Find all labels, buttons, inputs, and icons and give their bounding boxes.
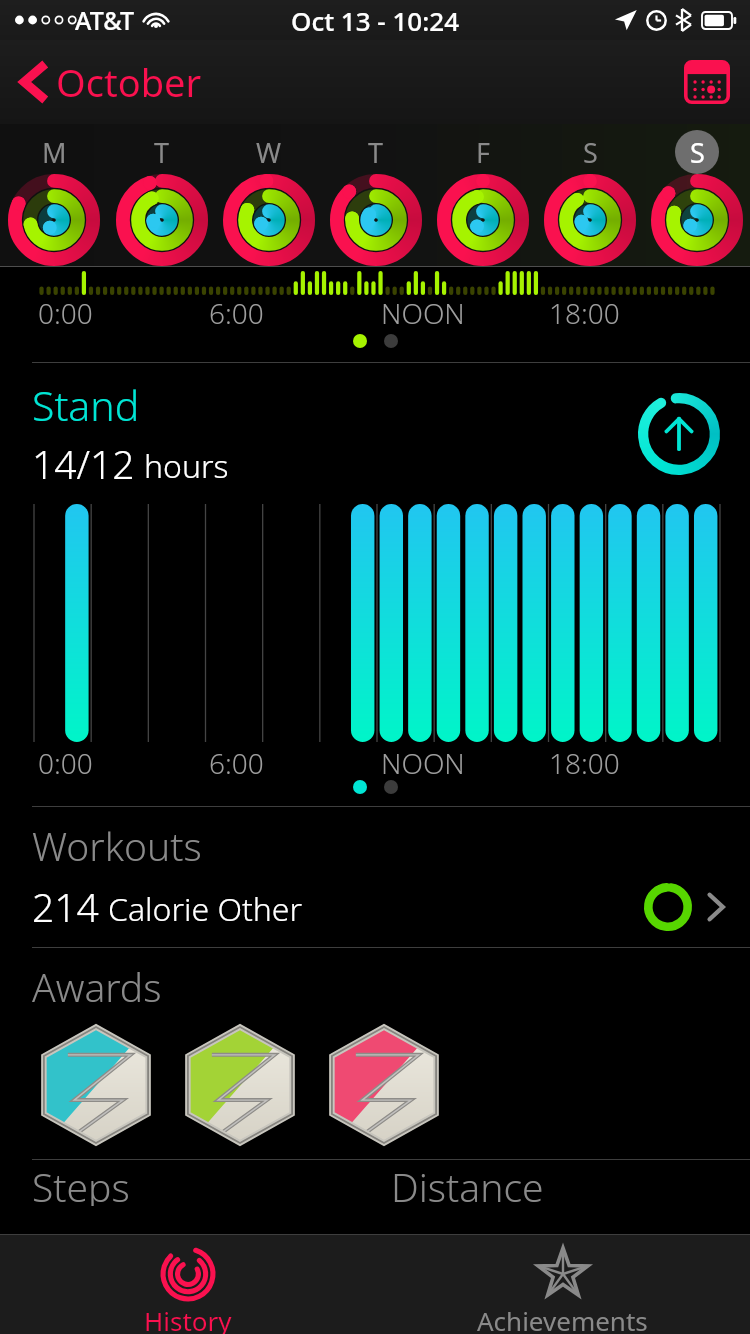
staticText: Distance [391,1160,544,1206]
staticText: AT&T [75,3,135,37]
staticText: S [690,134,705,171]
staticText: T [154,134,170,171]
staticText: M [42,134,67,171]
staticText: W [256,134,282,171]
staticText: History [144,1303,232,1334]
staticText: 18:00 [549,294,620,330]
button[interactable]: Workouts [0,807,750,947]
staticText: Stand [32,377,140,433]
staticText: hours [144,444,229,488]
staticText: 0:00 [38,294,93,330]
staticText: October [56,56,202,108]
staticText: NOON [381,294,465,330]
staticText: Oct 13 - 10:24 [291,3,460,38]
button[interactable]: M [0,124,108,266]
button[interactable]: S [536,124,643,266]
staticText: Calorie Other [108,887,303,931]
button[interactable]: Achievements [375,1235,750,1334]
staticText: F [476,134,491,171]
button[interactable]: Calendar [680,55,734,109]
button[interactable]: Award badge [320,1025,454,1145]
staticText: Awards [32,960,162,1013]
button[interactable]: History [0,1235,375,1334]
button[interactable]: S [643,124,750,266]
staticText: Steps [32,1160,130,1206]
staticText: 18:00 [549,744,620,780]
button[interactable]: October [16,48,206,116]
staticText: NOON [381,744,465,780]
button[interactable]: T [108,124,215,266]
staticText: 0:00 [38,744,93,780]
button[interactable]: Stand goal reached [638,393,720,475]
staticText: 14/12 [32,437,135,490]
button[interactable]: Award badge [32,1025,166,1145]
staticText: 6:00 [209,744,264,780]
staticText: 6:00 [209,294,264,330]
staticText: Workouts [32,819,202,872]
button[interactable]: W [215,124,322,266]
staticText: T [368,134,384,171]
staticText: 214 [32,880,99,933]
button[interactable]: T [322,124,429,266]
button[interactable]: F [429,124,536,266]
staticText: Achievements [477,1303,648,1334]
button[interactable]: Award badge [176,1025,310,1145]
staticText: S [583,134,598,171]
